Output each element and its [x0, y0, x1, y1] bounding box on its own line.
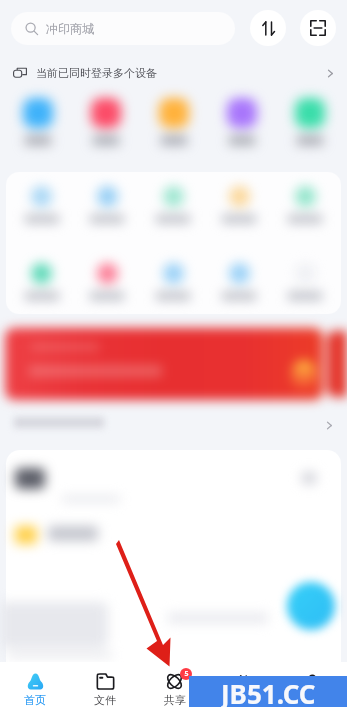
button[interactable]: 当前已同时登录多个设备	[0, 60, 347, 86]
button[interactable]: 传输	[209, 662, 278, 718]
button[interactable]: 文件	[70, 662, 140, 718]
staticText: 5	[184, 669, 189, 679]
button[interactable]: 首页	[0, 662, 70, 718]
staticText: 传输	[233, 693, 255, 707]
button[interactable]	[140, 186, 206, 223]
button[interactable]	[272, 263, 338, 300]
staticText: 冲印商城	[46, 21, 94, 36]
button[interactable]: 我的	[278, 662, 347, 718]
staticText: 首页	[24, 693, 46, 707]
button[interactable]	[9, 263, 74, 300]
staticText: 共享	[164, 693, 186, 707]
button[interactable]	[276, 92, 344, 145]
staticText: 文件	[94, 693, 116, 707]
button[interactable]	[72, 92, 140, 145]
button[interactable]	[74, 263, 140, 300]
staticText: 我的	[302, 693, 324, 707]
button[interactable]: Transfer	[250, 10, 286, 46]
button[interactable]	[140, 263, 206, 300]
button[interactable]	[74, 186, 140, 223]
button[interactable]	[272, 186, 338, 223]
button[interactable]: Scan	[300, 10, 336, 46]
button[interactable]	[140, 92, 208, 145]
button[interactable]: 5	[140, 662, 209, 718]
staticText: 当前已同时登录多个设备	[36, 66, 157, 80]
button[interactable]: 冲印商城	[11, 12, 235, 45]
button[interactable]	[208, 92, 276, 145]
button[interactable]: New	[287, 582, 335, 630]
button[interactable]	[9, 186, 74, 223]
button[interactable]	[206, 263, 272, 300]
button[interactable]	[3, 92, 72, 145]
staticText: JB51.CC	[221, 676, 316, 707]
button[interactable]	[5, 328, 323, 400]
button[interactable]	[206, 186, 272, 223]
